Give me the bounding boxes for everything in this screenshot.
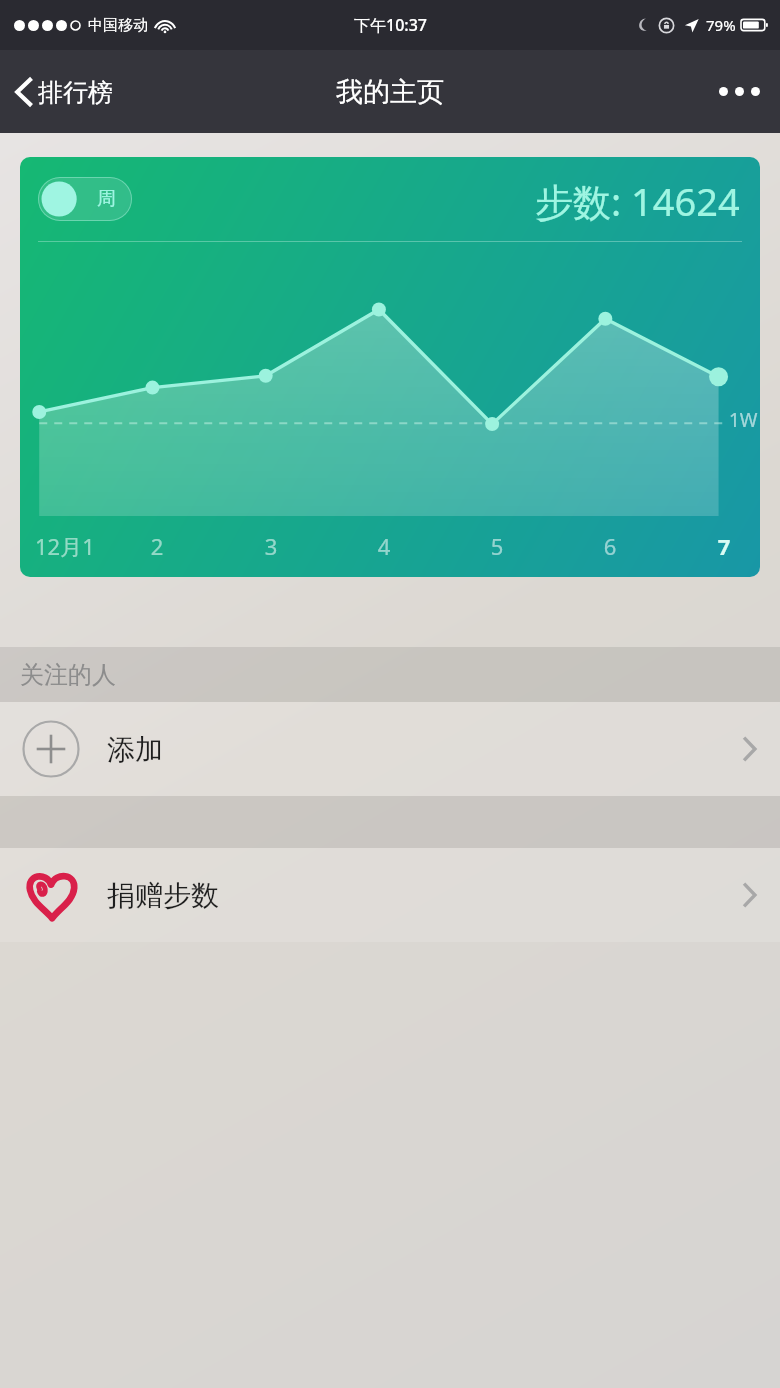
staticText: 1W [729,407,758,433]
staticText: 添加 [107,732,163,767]
staticText: 捐赠步数 [107,878,219,913]
staticText: 5 [484,531,510,561]
staticText: 2 [144,531,170,561]
staticText: 步数: 14624 [535,175,740,227]
staticText: 4 [371,531,397,561]
staticText: 中国移动 [88,16,148,35]
staticText: 12月1 [35,531,135,561]
staticText: 我的主页 [336,75,444,109]
button[interactable]: More options [699,69,780,114]
staticText: 3 [258,531,284,561]
button[interactable]: 捐赠步数 [0,848,780,942]
button[interactable]: 周 [20,157,760,577]
staticText: 下午10:37 [354,14,427,36]
button[interactable]: 周 [38,177,132,221]
staticText: 79% [706,15,736,35]
staticText: 排行榜 [38,77,113,108]
staticText: 7 [711,531,737,561]
button[interactable]: 添加 [0,702,780,796]
staticText: 周 [97,187,116,211]
button[interactable]: 排行榜 [0,66,125,118]
staticText: 关注的人 [20,660,116,690]
staticText: 6 [597,531,623,561]
